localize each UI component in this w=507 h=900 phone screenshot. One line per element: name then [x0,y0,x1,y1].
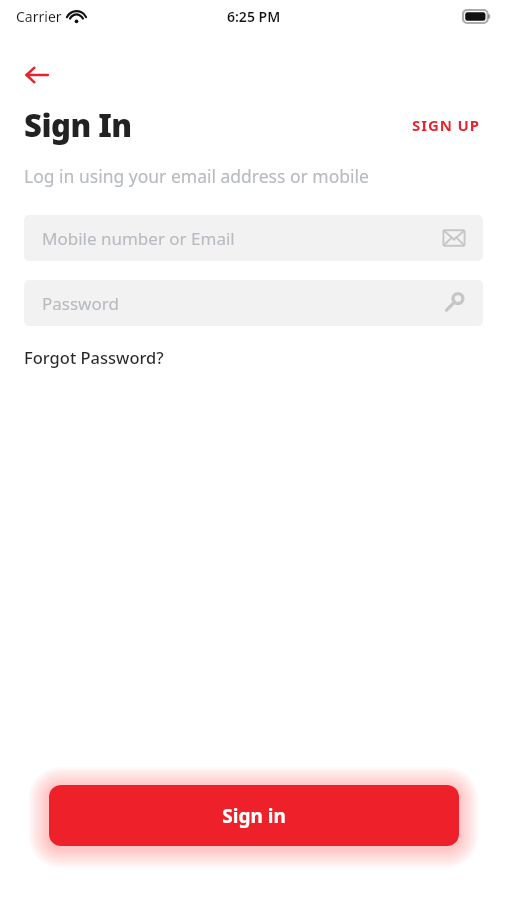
button[interactable]: Back [16,54,58,96]
staticText: Forgot Password? [24,346,164,368]
staticText: 6:25 PM [227,7,281,26]
other: Email [439,223,469,253]
button[interactable]: Sign in [49,785,459,846]
other: Password [439,288,469,318]
button[interactable]: Mobile number or Email [24,215,483,261]
button[interactable]: Forgot Password? [24,342,164,372]
staticText: SIGN UP [412,115,481,135]
button[interactable]: SIGN UP [410,109,483,141]
staticText: Carrier [16,7,62,26]
button[interactable]: Password [24,280,483,326]
staticText: Log in using your email address or mobil… [24,164,369,188]
staticText: Mobile number or Email [42,227,235,250]
staticText: Sign In [24,104,132,146]
staticText: Password [42,292,119,315]
staticText: Sign in [222,803,286,829]
